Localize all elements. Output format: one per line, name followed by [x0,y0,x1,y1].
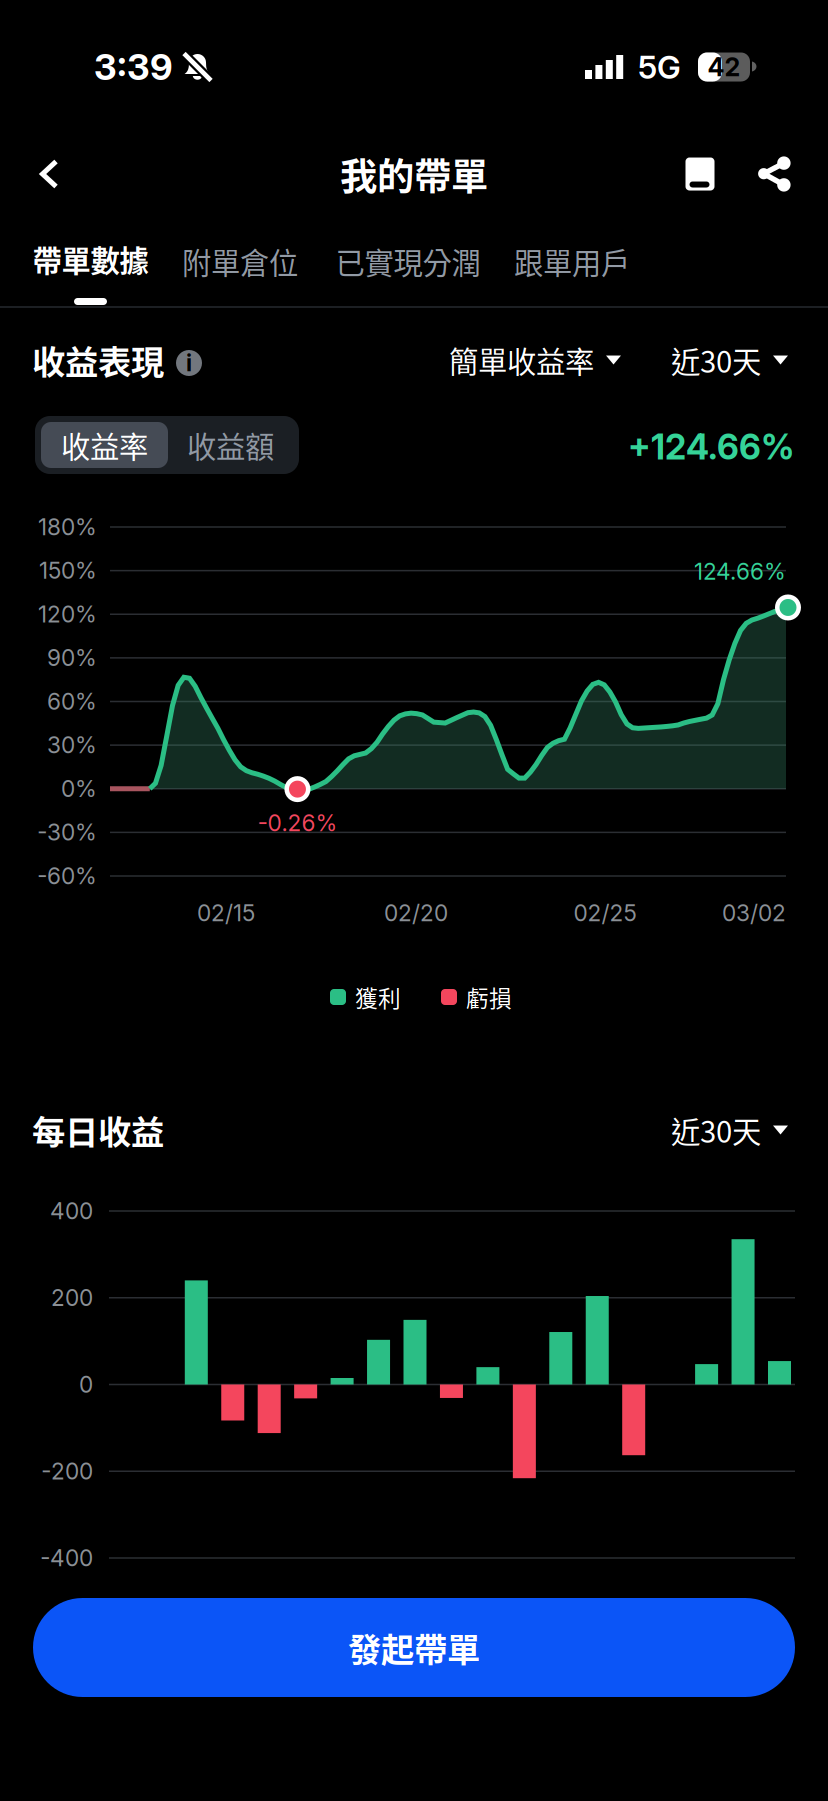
button[interactable]: 帶單數據 [32,240,149,316]
button[interactable]: Share [738,134,810,214]
staticText: 400 [50,1197,93,1225]
button[interactable]: 收益額 [168,422,293,468]
staticText: i [186,349,192,377]
button[interactable]: Notes [664,134,736,214]
staticText: 近30天 [671,1109,761,1151]
staticText: 跟單用戶 [514,240,630,282]
staticText: 附單倉位 [182,240,298,282]
staticText: 120% [38,600,97,628]
staticText: 02/20 [384,899,448,927]
staticText: 收益表現 [32,336,164,384]
staticText: +124.66% [628,426,794,468]
staticText: 虧損 [466,981,512,1013]
staticText: 02/25 [573,899,636,927]
staticText: 近30天 [671,339,761,381]
staticText: 每日收益 [32,1106,164,1154]
button[interactable]: 收益率 [41,422,168,468]
staticText: 150% [39,557,97,584]
staticText: 02/15 [197,899,255,927]
staticText: -60% [37,862,97,890]
button[interactable]: 近30天 [671,336,788,384]
button[interactable]: 已實現分潤 [335,240,481,316]
staticText: 我的帶單 [340,147,488,201]
staticText: 3:39 [94,45,173,89]
staticText: -400 [40,1544,93,1572]
button[interactable]: 跟單用戶 [513,240,631,316]
staticText: -200 [41,1457,93,1485]
button[interactable]: 發起帶單 [33,1598,795,1697]
staticText: 60% [47,688,97,715]
staticText: 180% [38,513,97,541]
staticText: 30% [47,731,97,759]
button[interactable]: 簡單收益率 [449,336,621,384]
staticText: 5G [638,48,681,86]
staticText: 03/02 [722,899,786,927]
staticText: 90% [47,644,97,672]
staticText: 收益額 [187,424,274,466]
staticText: 0 [79,1371,93,1398]
staticText: 0% [61,775,97,802]
staticText: 簡單收益率 [449,339,594,381]
staticText: 已實現分潤 [335,240,480,282]
button[interactable]: 附單倉位 [181,240,299,316]
button[interactable]: Back [4,134,94,214]
staticText: 200 [51,1284,93,1311]
staticText: 帶單數據 [32,238,148,280]
staticText: 收益率 [61,424,148,466]
staticText: -0.26% [257,809,337,837]
button[interactable]: 近30天 [671,1106,788,1154]
staticText: 42 [707,52,740,82]
staticText: 獲利 [355,981,401,1013]
staticText: 124.66% [694,558,786,585]
staticText: -30% [37,819,97,846]
staticText: 發起帶單 [348,1623,480,1672]
